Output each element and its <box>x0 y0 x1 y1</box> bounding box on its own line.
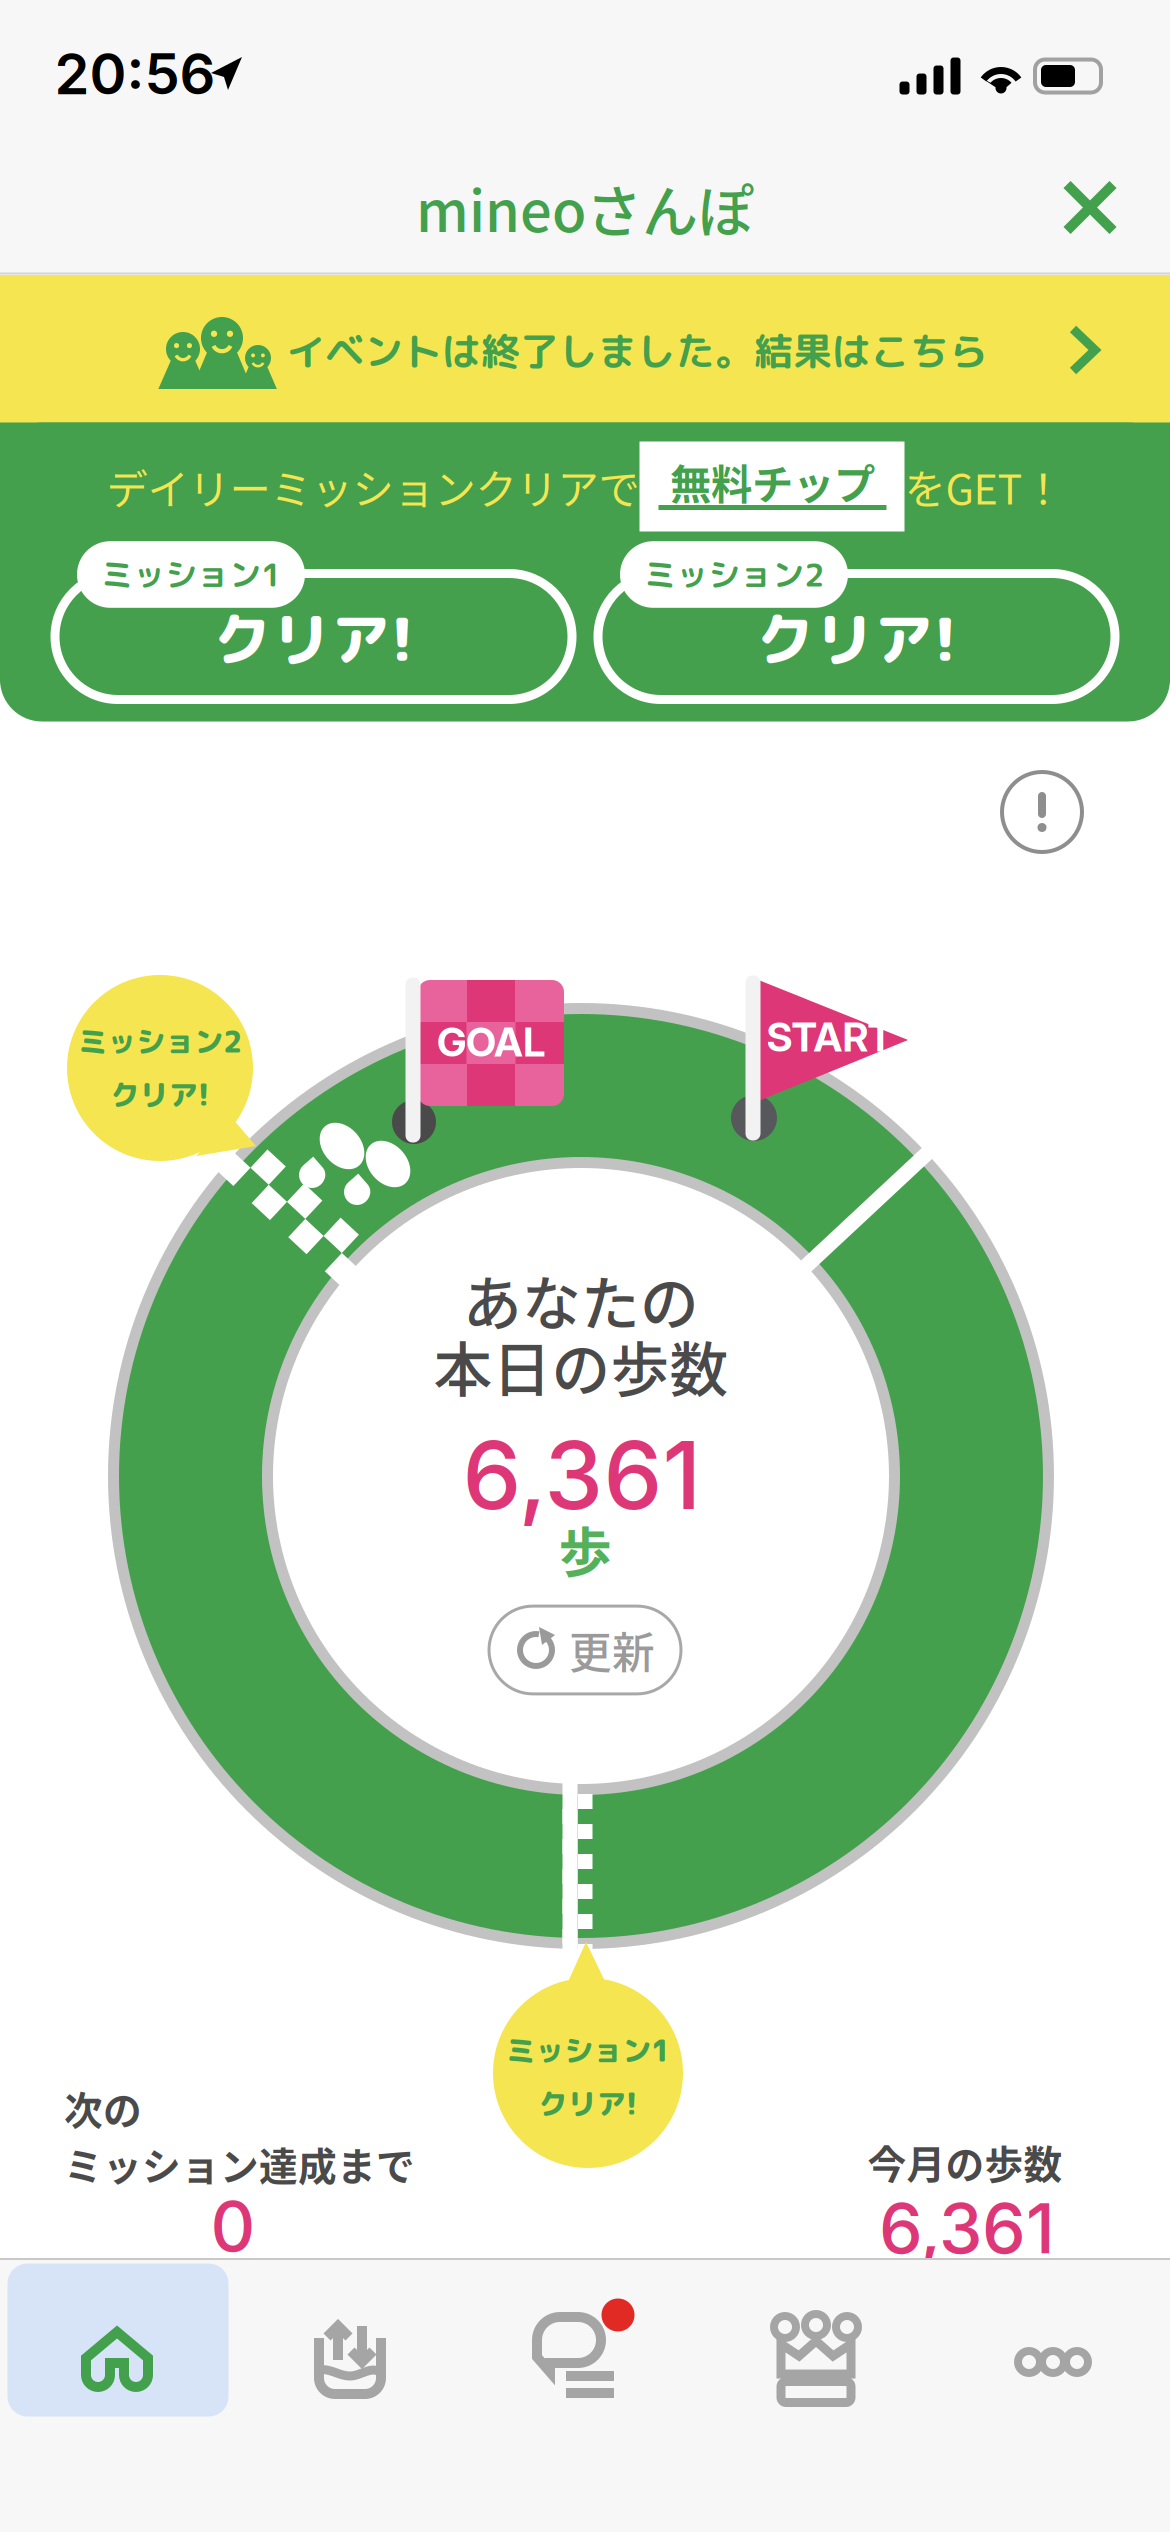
staticText: ミッション1 <box>101 552 281 597</box>
staticText: あなたの <box>463 1257 699 1342</box>
staticText: 更新 <box>569 1619 655 1681</box>
button[interactable]: Information <box>987 757 1097 867</box>
button[interactable]: Ranking <box>702 2264 936 2417</box>
staticText: イベントは終了しました。結果はこちら <box>286 324 988 378</box>
button[interactable]: Home <box>0 2264 234 2417</box>
staticText: 次の <box>64 2080 142 2136</box>
button[interactable]: Data <box>234 2264 468 2417</box>
button[interactable]: クリア! <box>0 422 1170 721</box>
staticText: デイリーミッションクリアで <box>106 457 639 516</box>
staticText: 本日の歩数 <box>433 1323 728 1408</box>
staticText: ミッション1 <box>506 2030 670 2071</box>
staticText: クリア! <box>756 598 957 679</box>
staticText: mineoさんぽ <box>416 167 754 248</box>
staticText: クリア! <box>213 598 414 679</box>
staticText: ミッション2 <box>78 1021 242 1062</box>
button[interactable]: Close <box>1035 152 1145 262</box>
staticText: ミッション2 <box>644 552 824 597</box>
staticText: 無料チップ <box>670 452 875 511</box>
staticText: 0 <box>210 2184 255 2268</box>
button[interactable]: イベントは終了しました。結果はこちら <box>0 275 1170 423</box>
staticText: 今月の歩数 <box>867 2134 1062 2190</box>
staticText: ミッション達成まで <box>64 2136 415 2192</box>
staticText: をGET！ <box>904 457 1063 516</box>
staticText: 20:56 <box>54 40 215 108</box>
button[interactable]: クリア! <box>0 422 1170 721</box>
staticText: 歩 <box>558 1510 611 1588</box>
staticText: START <box>766 1013 893 1061</box>
button[interactable]: 更新 <box>489 1606 681 1694</box>
button[interactable]: More <box>936 2264 1170 2417</box>
staticText: 6,361 <box>879 2186 1055 2270</box>
staticText: 6,361 <box>462 1418 701 1531</box>
staticText: クリア! <box>110 1074 209 1115</box>
button[interactable]: Messages <box>468 2264 702 2417</box>
staticText: クリア! <box>538 2083 637 2124</box>
staticText: GOAL <box>437 1018 545 1066</box>
